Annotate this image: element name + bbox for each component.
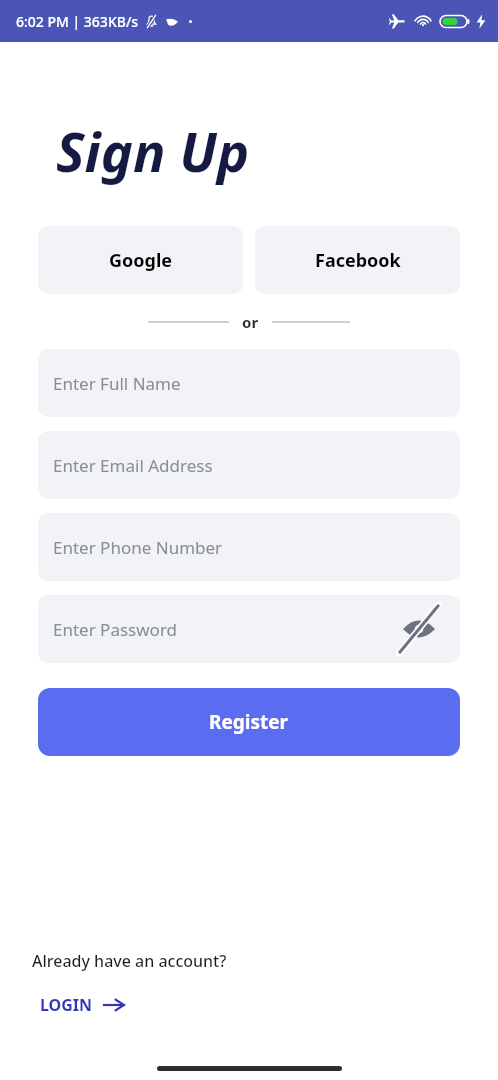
button[interactable]: Enter Email Address — [38, 431, 460, 499]
staticText: Facebook — [315, 248, 401, 273]
button[interactable]: LOGIN — [38, 990, 126, 1020]
staticText: Enter Full Name — [53, 372, 181, 395]
staticText: Already have an account? — [32, 950, 227, 972]
button[interactable]: Enter Password — [38, 595, 460, 663]
staticText: 6:02 PM | 363KB/s — [16, 12, 139, 31]
staticText: Enter Password — [53, 618, 178, 641]
button[interactable]: Enter Phone Number — [38, 513, 460, 581]
staticText: Google — [109, 248, 173, 273]
button[interactable]: Facebook — [255, 226, 460, 294]
button[interactable]: Enter Full Name — [38, 349, 460, 417]
button[interactable]: Show password — [398, 608, 440, 650]
button[interactable]: Google — [38, 226, 243, 294]
staticText: Register — [209, 709, 289, 735]
staticText: LOGIN — [40, 994, 93, 1016]
staticText: or — [242, 312, 259, 332]
button[interactable]: Register — [38, 688, 460, 756]
staticText: Sign Up — [56, 114, 250, 188]
staticText: Enter Email Address — [53, 454, 213, 477]
staticText: Enter Phone Number — [53, 536, 223, 559]
